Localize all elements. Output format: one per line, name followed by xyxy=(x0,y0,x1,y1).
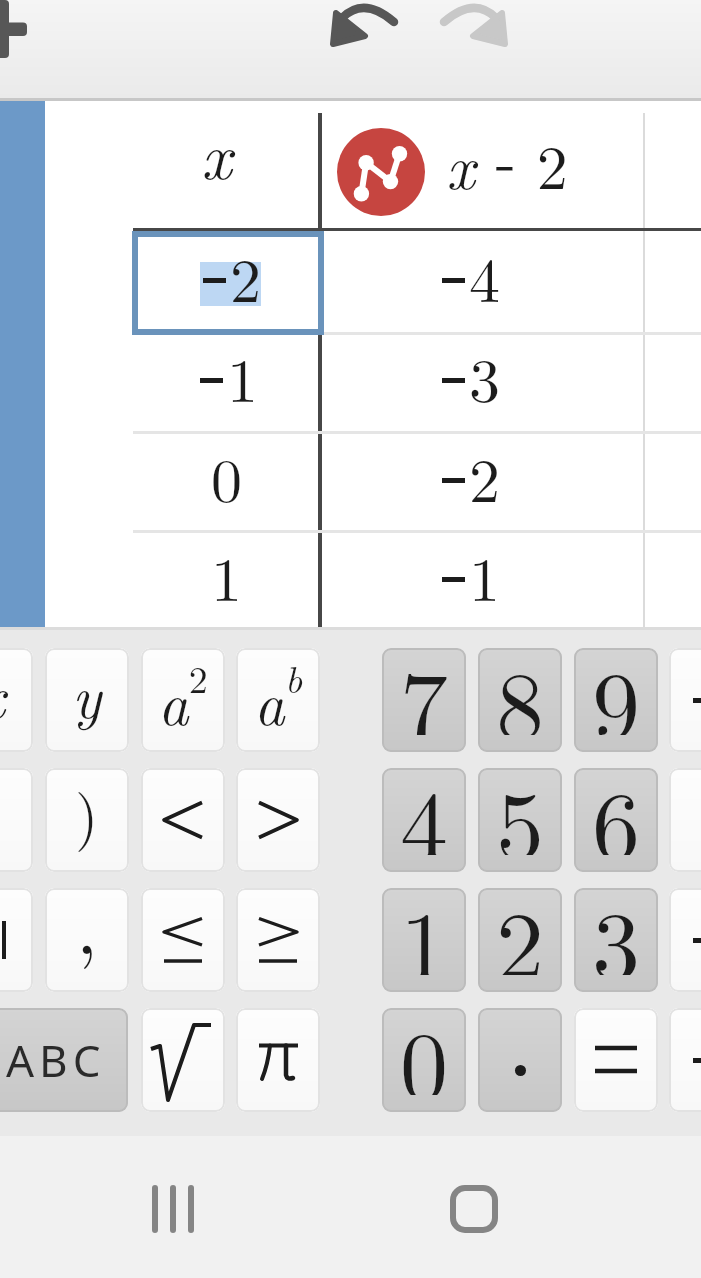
button[interactable] xyxy=(322,335,643,431)
staticText: 0 xyxy=(211,432,243,520)
staticText: y xyxy=(72,650,102,735)
button[interactable]: 0 xyxy=(382,1008,466,1112)
button[interactable] xyxy=(133,113,318,228)
staticText: 9 xyxy=(592,648,640,735)
staticText: 2 xyxy=(469,432,501,520)
button[interactable]: ab xyxy=(236,648,320,752)
button[interactable]: ( xyxy=(0,768,33,872)
button[interactable] xyxy=(669,648,701,752)
staticText: , xyxy=(76,888,98,970)
button[interactable] xyxy=(132,231,324,335)
button[interactable] xyxy=(141,888,225,992)
button[interactable] xyxy=(133,632,318,728)
staticText: ABC xyxy=(6,1030,106,1090)
button[interactable] xyxy=(322,533,643,629)
staticText: 8 xyxy=(496,648,544,735)
button[interactable] xyxy=(574,1008,658,1112)
button[interactable] xyxy=(669,768,701,872)
button[interactable] xyxy=(0,888,33,992)
button[interactable] xyxy=(236,888,320,992)
staticText: ab xyxy=(254,650,303,742)
button[interactable]: 8 xyxy=(478,648,562,752)
button[interactable] xyxy=(430,1165,520,1255)
staticText: a2 xyxy=(158,650,208,742)
button[interactable]: 3 xyxy=(574,888,658,992)
staticText: 3 xyxy=(469,332,501,420)
button[interactable] xyxy=(133,335,318,431)
button[interactable] xyxy=(322,237,643,333)
button[interactable]: 6 xyxy=(574,768,658,872)
staticText: 2 xyxy=(230,232,262,320)
staticText: 1 xyxy=(469,531,501,619)
button[interactable]: 4 xyxy=(382,768,466,872)
staticText: x xyxy=(201,105,232,198)
staticText: 1 xyxy=(227,332,259,420)
staticText: 6 xyxy=(592,768,640,855)
button[interactable]: ) xyxy=(45,768,129,872)
button[interactable] xyxy=(236,1008,320,1112)
button[interactable]: 9 xyxy=(574,648,658,752)
button[interactable] xyxy=(141,768,225,872)
button[interactable] xyxy=(141,1008,225,1112)
staticText: 4 xyxy=(469,232,501,320)
staticText: x xyxy=(0,650,5,735)
button[interactable]: x xyxy=(0,648,33,752)
button[interactable]: 2 xyxy=(478,888,562,992)
button[interactable] xyxy=(236,768,320,872)
button[interactable] xyxy=(0,101,45,630)
button[interactable] xyxy=(322,434,643,530)
staticText: 2 xyxy=(496,888,544,975)
staticText: 1 xyxy=(400,888,448,975)
staticText: 1 xyxy=(211,531,243,619)
button[interactable]: 5 xyxy=(478,768,562,872)
button[interactable]: 7 xyxy=(382,648,466,752)
button[interactable] xyxy=(324,2,404,50)
button[interactable]: 1 xyxy=(382,888,466,992)
button[interactable]: ABC xyxy=(0,1008,128,1112)
button[interactable] xyxy=(322,632,643,728)
staticText: 5 xyxy=(496,768,544,855)
button[interactable] xyxy=(669,1008,701,1112)
button[interactable]: y xyxy=(45,648,129,752)
button[interactable] xyxy=(478,1008,562,1112)
button[interactable] xyxy=(669,888,701,992)
staticText: ) xyxy=(75,769,99,854)
button[interactable] xyxy=(0,0,30,62)
button[interactable]: a2 xyxy=(141,648,225,752)
staticText: 7 xyxy=(400,648,448,735)
staticText: 0 xyxy=(400,1008,448,1095)
staticText: x - 2 xyxy=(446,112,568,207)
button[interactable]: , xyxy=(45,888,129,992)
button[interactable] xyxy=(434,2,514,50)
button[interactable] xyxy=(133,434,318,530)
button[interactable] xyxy=(322,113,643,228)
staticText: 4 xyxy=(400,768,448,855)
button[interactable] xyxy=(133,533,318,629)
staticText: 3 xyxy=(592,888,640,975)
button[interactable] xyxy=(130,1165,220,1255)
